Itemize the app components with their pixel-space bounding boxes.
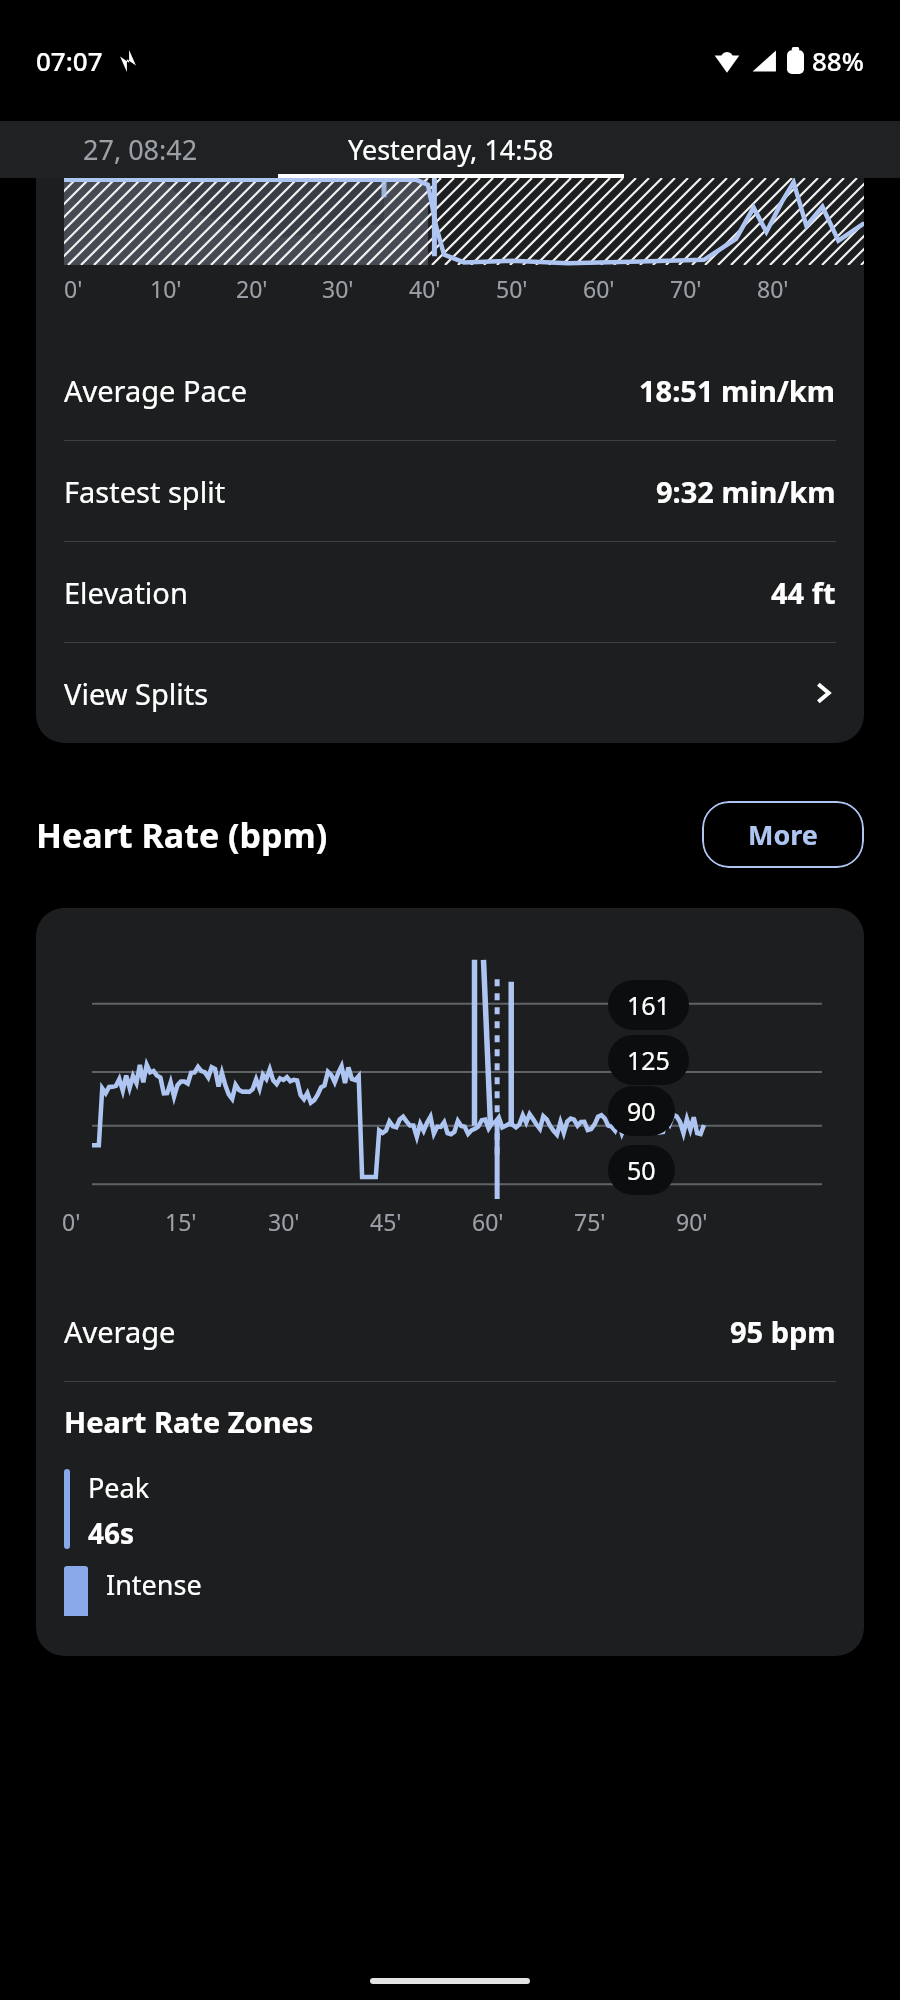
staticText: 46s	[88, 1514, 135, 1552]
staticText: 80'	[757, 273, 789, 304]
staticText: 0'	[64, 273, 83, 304]
staticText: 27, 08:42	[83, 131, 198, 168]
staticText: Peak	[88, 1469, 150, 1506]
button[interactable]: Fastest split	[36, 441, 864, 542]
staticText: 44 ft	[771, 573, 836, 612]
staticText: 70'	[670, 273, 702, 304]
staticText: 9:32 min/km	[656, 472, 836, 511]
button[interactable]: Yesterday, 14:58	[278, 121, 624, 178]
staticText: Intense	[106, 1566, 202, 1603]
staticText: 40'	[409, 273, 441, 304]
staticText: 20'	[236, 273, 268, 304]
other: View splits	[810, 680, 836, 706]
button[interactable]: View Splits	[36, 643, 864, 743]
staticText: Average	[64, 1312, 176, 1351]
staticText: 50	[627, 1153, 656, 1187]
button[interactable]: More	[702, 801, 864, 868]
staticText: Average Pace	[64, 371, 248, 410]
staticText: 07:07	[36, 43, 103, 78]
button[interactable]: Peak	[64, 1469, 150, 1552]
staticText: 90'	[676, 1206, 708, 1237]
staticText: Yesterday, 14:58	[348, 131, 554, 168]
staticText: 60'	[583, 273, 615, 304]
staticText: Fastest split	[64, 472, 226, 511]
staticText: 95 bpm	[730, 1312, 836, 1351]
staticText: 60'	[472, 1206, 504, 1237]
button[interactable]: Intense	[64, 1566, 202, 1616]
staticText: 10'	[150, 273, 182, 304]
staticText: View Splits	[64, 674, 209, 713]
staticText: 15'	[165, 1206, 197, 1237]
staticText: 0'	[62, 1206, 81, 1237]
staticText: 88%	[812, 43, 864, 78]
staticText: 18:51 min/km	[639, 371, 836, 410]
staticText: 161	[627, 988, 670, 1022]
staticText: 90	[627, 1094, 656, 1128]
button[interactable]: Average Pace	[36, 340, 864, 441]
staticText: 30'	[268, 1206, 300, 1237]
staticText: 30'	[322, 273, 354, 304]
staticText: More	[748, 816, 818, 853]
staticText: 45'	[370, 1206, 402, 1237]
staticText: 75'	[574, 1206, 606, 1237]
staticText: Heart Rate Zones	[64, 1402, 314, 1441]
staticText: Heart Rate (bpm)	[36, 812, 328, 858]
staticText: Elevation	[64, 573, 188, 612]
staticText: 50'	[496, 273, 528, 304]
staticText: 125	[627, 1043, 670, 1077]
button[interactable]: Elevation	[36, 542, 864, 643]
button[interactable]: 27, 08:42	[0, 121, 280, 178]
button[interactable]: Average	[36, 1281, 864, 1382]
